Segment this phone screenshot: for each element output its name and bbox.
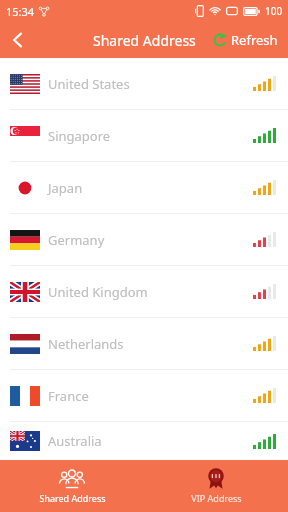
button[interactable]: Refresh xyxy=(211,26,280,54)
staticText: Australia xyxy=(48,432,102,450)
button[interactable]: Netherlands xyxy=(0,318,288,369)
button[interactable]: Back xyxy=(0,22,36,58)
button[interactable]: Germany xyxy=(0,214,288,265)
staticText: Shared Address xyxy=(93,31,196,50)
staticText: Japan xyxy=(48,179,83,197)
staticText: Shared Address xyxy=(39,492,106,504)
staticText: France xyxy=(48,387,89,405)
button[interactable]: United States xyxy=(0,58,288,109)
button[interactable]: Shared Address xyxy=(0,460,144,512)
button[interactable]: France xyxy=(0,370,288,421)
staticText: Singapore xyxy=(48,127,111,145)
staticText: United Kingdom xyxy=(48,283,148,301)
button[interactable]: VIP Address xyxy=(144,460,288,512)
staticText: United States xyxy=(48,75,130,93)
staticText: 15:34 xyxy=(6,4,35,19)
button[interactable]: Singapore xyxy=(0,110,288,161)
button[interactable]: United Kingdom xyxy=(0,266,288,317)
button[interactable]: Australia xyxy=(0,422,288,460)
staticText: 100 xyxy=(265,4,283,18)
staticText: VIP Address xyxy=(191,492,242,504)
staticText: Netherlands xyxy=(48,335,124,353)
staticText: Refresh xyxy=(231,31,278,49)
button[interactable]: Japan xyxy=(0,162,288,213)
staticText: Germany xyxy=(48,231,105,249)
